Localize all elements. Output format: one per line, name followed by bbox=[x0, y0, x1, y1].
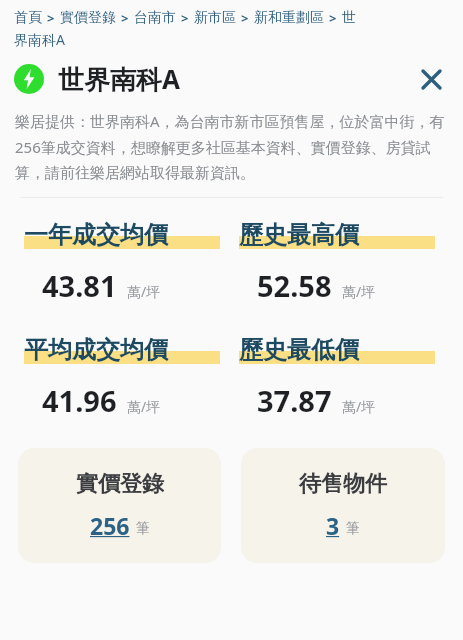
staticText: 樂居提供：世界南科A，為台南市新市區預售屋，位於富中街，有256筆成交資料，想瞭… bbox=[15, 111, 448, 182]
staticText: 世界南科A bbox=[58, 61, 180, 97]
button[interactable]: 台南市 bbox=[134, 9, 176, 27]
staticText: 3 bbox=[326, 510, 340, 541]
staticText: 待售物件 bbox=[299, 470, 387, 498]
staticText: 筆 bbox=[136, 520, 150, 538]
button[interactable]: 界南科A bbox=[14, 30, 65, 49]
button[interactable]: Close bbox=[415, 63, 447, 95]
staticText: 萬/坪 bbox=[127, 397, 161, 416]
button[interactable]: 新和重劃區 bbox=[254, 9, 324, 27]
staticText: 萬/坪 bbox=[127, 282, 161, 301]
staticText: > bbox=[121, 9, 129, 27]
staticText: > bbox=[329, 9, 337, 27]
staticText: 平均成交均價 bbox=[24, 335, 168, 365]
button[interactable]: 新市區 bbox=[194, 9, 236, 27]
button[interactable]: 首頁 bbox=[14, 9, 42, 27]
staticText: 萬/坪 bbox=[342, 282, 376, 301]
staticText: 41.96 bbox=[42, 381, 117, 420]
button[interactable]: 待售物件 bbox=[241, 448, 445, 563]
staticText: 歷史最低價 bbox=[239, 335, 359, 365]
staticText: 一年成交均價 bbox=[24, 220, 168, 250]
staticText: > bbox=[47, 9, 55, 27]
button[interactable]: 世 bbox=[342, 9, 356, 27]
staticText: 43.81 bbox=[42, 266, 117, 305]
staticText: > bbox=[181, 9, 189, 27]
staticText: 256 bbox=[90, 510, 130, 541]
button[interactable]: 實價登錄 bbox=[60, 9, 116, 27]
staticText: 筆 bbox=[346, 520, 360, 538]
staticText: 萬/坪 bbox=[342, 397, 376, 416]
staticText: 52.58 bbox=[257, 266, 332, 305]
button[interactable]: 實價登錄 bbox=[18, 448, 221, 563]
staticText: 實價登錄 bbox=[76, 470, 164, 498]
staticText: 37.87 bbox=[257, 381, 332, 420]
staticText: 歷史最高價 bbox=[239, 220, 359, 250]
staticText: > bbox=[241, 9, 249, 27]
